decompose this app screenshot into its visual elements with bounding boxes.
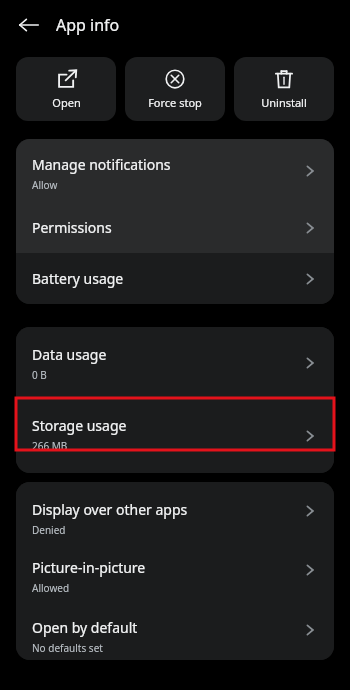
button[interactable]: Uninstall <box>234 57 334 121</box>
staticText: Allow <box>32 178 58 192</box>
staticText: App info <box>56 14 120 36</box>
staticText: Open by default <box>32 618 138 637</box>
button[interactable]: Open <box>16 57 116 121</box>
staticText: 266 MB <box>32 439 68 453</box>
staticText: Manage notifications <box>32 155 171 174</box>
staticText: Data usage <box>32 345 107 364</box>
staticText: Open <box>52 95 81 110</box>
staticText: 0 B <box>32 368 47 382</box>
button[interactable]: Manage notifications <box>16 139 334 202</box>
staticText: Denied <box>32 523 66 537</box>
staticText: Picture-in-picture <box>32 558 146 577</box>
button[interactable]: Permissions <box>16 202 334 253</box>
staticText: Storage usage <box>32 416 127 435</box>
button[interactable]: Storage usage <box>16 398 334 473</box>
staticText: Display over other apps <box>32 500 188 519</box>
staticText: Battery usage <box>32 269 124 288</box>
button[interactable]: Data usage <box>16 327 334 398</box>
button[interactable]: Force stop <box>125 57 225 121</box>
staticText: Allowed <box>32 581 70 595</box>
button[interactable]: Battery usage <box>16 253 334 304</box>
staticText: Uninstall <box>261 95 307 110</box>
button[interactable]: Back <box>14 10 44 40</box>
button[interactable]: Open by default <box>16 600 334 660</box>
button[interactable]: Picture-in-picture <box>16 540 334 600</box>
staticText: Force stop <box>148 95 202 110</box>
staticText: No defaults set <box>32 641 103 655</box>
button[interactable]: Display over other apps <box>16 482 334 540</box>
staticText: Permissions <box>32 218 112 237</box>
